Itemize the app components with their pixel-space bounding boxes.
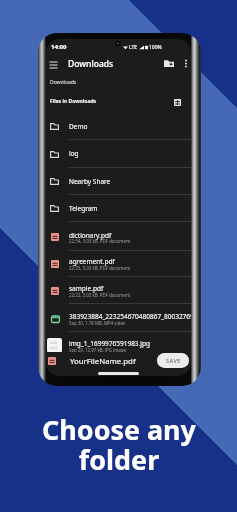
staticText: LTE xyxy=(129,44,138,51)
button[interactable]: Open navigation menu xyxy=(49,60,58,69)
staticText: Downloads xyxy=(50,79,77,86)
staticText: log xyxy=(69,149,79,158)
staticText: dictionary.pdf xyxy=(69,231,112,240)
button[interactable]: 383923884_223254670480867_800327696... xyxy=(46,305,191,332)
staticText: Telegram xyxy=(69,204,98,213)
button[interactable]: dictionary.pdf xyxy=(46,223,191,251)
staticText: img_1_1699976591983.jpg xyxy=(69,339,150,348)
button[interactable]: More options xyxy=(183,59,189,68)
button[interactable]: Switch to grid view xyxy=(174,99,181,106)
staticText: Files in Downloads xyxy=(50,98,97,105)
staticText: Nearby Share xyxy=(69,177,111,186)
button[interactable]: Create new folder xyxy=(164,59,174,67)
staticText: Sep 30, 1.78 MB, MP4 video xyxy=(69,320,126,326)
button[interactable]: Downloads xyxy=(50,79,77,86)
staticText: 14:00 xyxy=(51,43,67,51)
staticText: YourFileName.pdf xyxy=(70,356,136,367)
staticText: Demo xyxy=(69,122,88,131)
staticText: Downloads xyxy=(68,58,114,70)
button[interactable]: Nearby Share xyxy=(46,168,191,195)
button[interactable]: sample.pdf xyxy=(46,277,191,304)
staticText: 22:33, 3.03 kB, PDF document xyxy=(69,265,131,271)
staticText: 383923884_223254670480867_800327696... xyxy=(69,312,191,321)
staticText: agreement.pdf xyxy=(69,257,115,266)
staticText: 22:34, 3.03 kB, PDF document xyxy=(69,238,131,244)
staticText: 100% xyxy=(149,44,162,51)
button[interactable]: Demo xyxy=(46,113,191,140)
staticText: sample.pdf xyxy=(69,284,104,293)
staticText: Choose any folder xyxy=(42,411,196,478)
staticText: SAVE xyxy=(166,357,181,364)
button[interactable]: Telegram xyxy=(46,195,191,222)
staticText: 22:22, 3.03 kB, PDF document xyxy=(69,292,131,298)
button[interactable]: img_1_1699976591983.jpg xyxy=(46,332,191,359)
button[interactable]: SAVE xyxy=(157,353,189,368)
staticText: Sep 29, 12.97 kB, JPG image xyxy=(69,347,126,353)
button[interactable]: agreement.pdf xyxy=(46,250,191,277)
button[interactable]: log xyxy=(46,140,191,168)
